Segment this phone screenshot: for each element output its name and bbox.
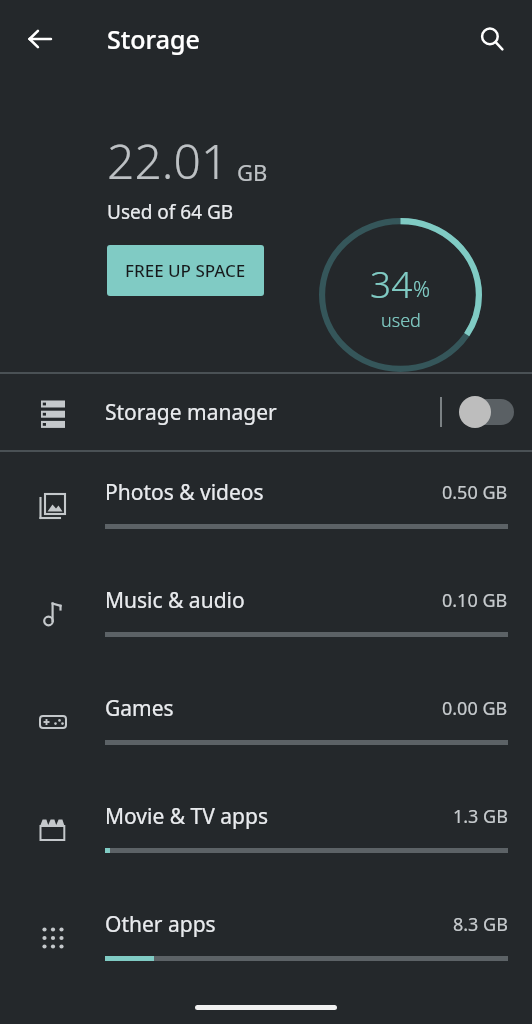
button[interactable]: Photos & videos bbox=[0, 452, 532, 560]
button[interactable]: Search bbox=[466, 13, 518, 65]
staticText: Music & audio bbox=[105, 586, 442, 615]
staticText: 1.3 GB bbox=[453, 804, 508, 829]
staticText: 34 bbox=[370, 258, 413, 308]
staticText: Storage bbox=[107, 22, 200, 56]
staticText: % bbox=[413, 275, 431, 304]
staticText: used bbox=[381, 308, 421, 333]
button[interactable]: Other apps bbox=[0, 884, 532, 992]
staticText: Other apps bbox=[105, 910, 453, 939]
staticText: Games bbox=[105, 694, 442, 723]
staticText: 0.10 GB bbox=[442, 588, 508, 613]
staticText: FREE UP SPACE bbox=[125, 259, 246, 282]
button[interactable]: FREE UP SPACE bbox=[107, 245, 264, 296]
staticText: 0.00 GB bbox=[442, 696, 508, 721]
button[interactable]: Music & audio bbox=[0, 560, 532, 668]
button[interactable]: Storage manager toggle bbox=[442, 374, 532, 450]
staticText: Storage manager bbox=[105, 398, 440, 427]
button[interactable]: Games bbox=[0, 668, 532, 776]
staticText: GB bbox=[237, 157, 268, 187]
staticText: 8.3 GB bbox=[453, 912, 508, 937]
button[interactable]: Movie & TV apps bbox=[0, 776, 532, 884]
staticText: Photos & videos bbox=[105, 478, 442, 507]
staticText: 22.01 bbox=[107, 128, 229, 193]
button[interactable]: Storage manager bbox=[0, 374, 532, 450]
staticText: Used of 64 GB bbox=[107, 199, 234, 225]
staticText: Movie & TV apps bbox=[105, 802, 453, 831]
button[interactable]: Back bbox=[14, 13, 66, 65]
staticText: 0.50 GB bbox=[442, 480, 508, 505]
